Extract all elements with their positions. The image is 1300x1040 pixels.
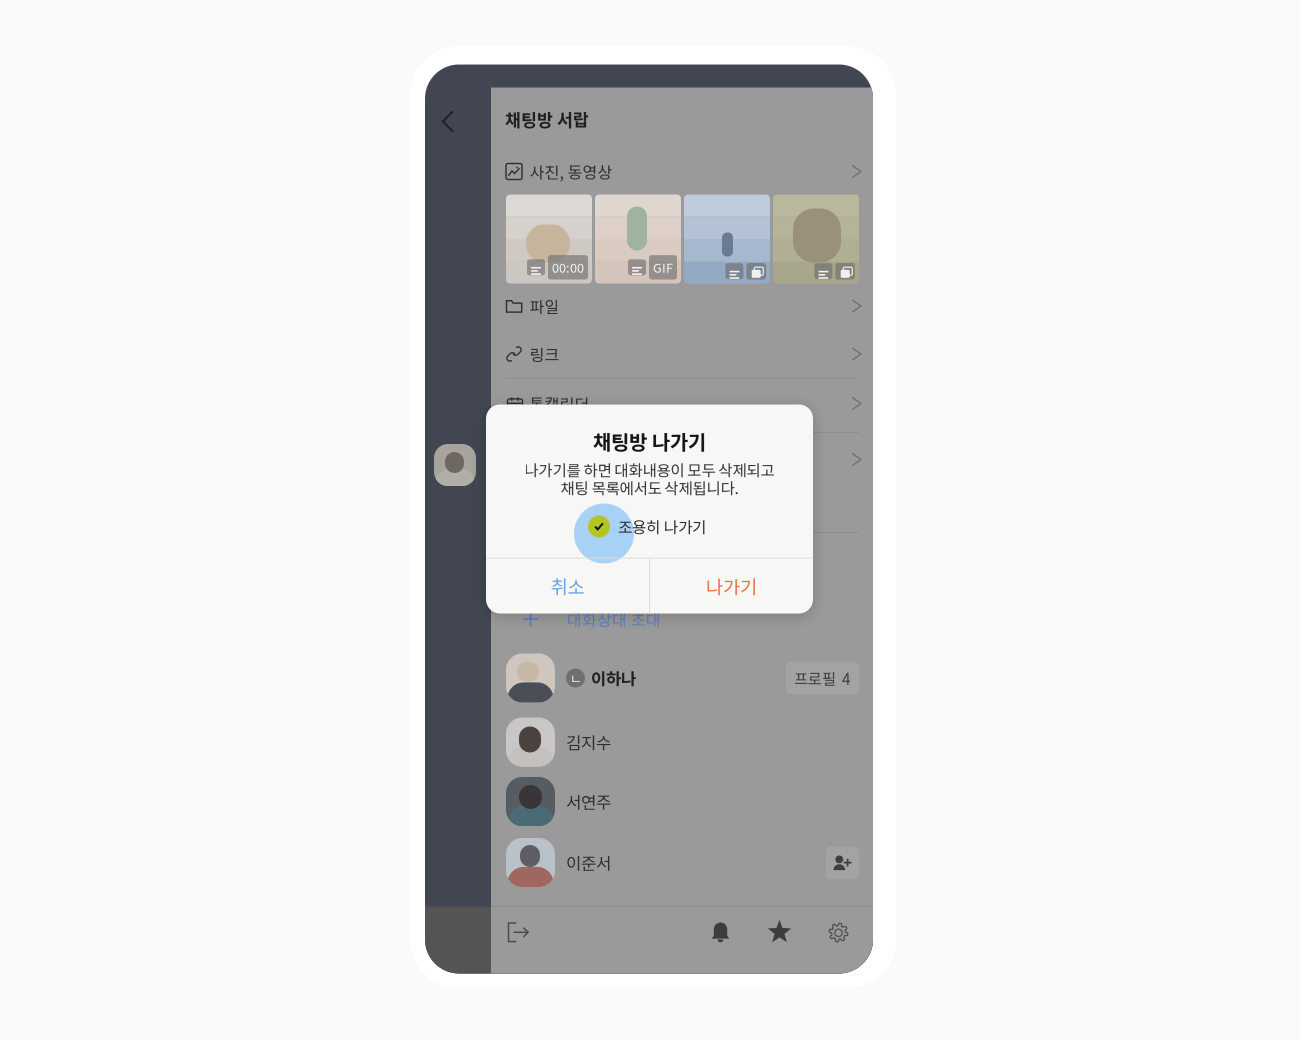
button[interactable]: 링크 [491, 330, 873, 378]
staticText: 프로필 4 [794, 667, 851, 689]
staticText: 취소 [550, 572, 584, 599]
staticText: 이하나 [591, 666, 636, 690]
button[interactable]: 나가기 [650, 558, 813, 613]
button[interactable]: Settings [818, 911, 859, 953]
button[interactable]: 서연주 [491, 771, 873, 832]
button[interactable]: Back [430, 99, 466, 144]
button[interactable]: 파일 [491, 282, 873, 330]
button[interactable]: 김지수 [491, 711, 873, 772]
staticText: 톡캘린더 [529, 392, 589, 415]
staticText: 채팅방 나가기 [593, 426, 706, 455]
button[interactable]: Favorite [757, 910, 802, 955]
staticText: 파일 [529, 294, 559, 318]
button[interactable]: Leave chat room [497, 912, 539, 953]
staticText: 조용히 나가기 [618, 515, 706, 538]
staticText: 나가기 [706, 572, 757, 599]
staticText: GIF [653, 258, 673, 276]
button[interactable]: 사진, 동영상 [491, 149, 873, 193]
staticText: 나가기를 하면 대화내용이 모두 삭제되고 [524, 458, 774, 481]
button[interactable]: ㄴ [491, 647, 873, 708]
button[interactable]: 조용히 나가기 [588, 515, 706, 538]
button[interactable]: 톡캘린더 [491, 379, 873, 427]
staticText: 00:00 [552, 258, 584, 276]
button[interactable]: 공지 [491, 435, 873, 483]
staticText: 채팅 목록에서도 삭제됩니다. [560, 476, 738, 499]
staticText: 이준서 [566, 850, 611, 874]
staticText: 서연주 [566, 789, 611, 813]
staticText: 대화상대 초대 [567, 607, 661, 631]
staticText: 채팅방 서랍 [505, 106, 589, 132]
staticText: ㄴ [569, 668, 581, 688]
button[interactable]: 취소 [486, 558, 649, 613]
staticText: 링크 [529, 342, 559, 366]
staticText: 김지수 [566, 730, 611, 754]
button[interactable]: 이준서 [491, 832, 873, 893]
button[interactable]: 대화상대 초대 [491, 595, 873, 643]
staticText: 공지 [529, 448, 559, 471]
button[interactable]: Notifications [701, 910, 740, 955]
staticText: 사진, 동영상 [529, 160, 612, 183]
